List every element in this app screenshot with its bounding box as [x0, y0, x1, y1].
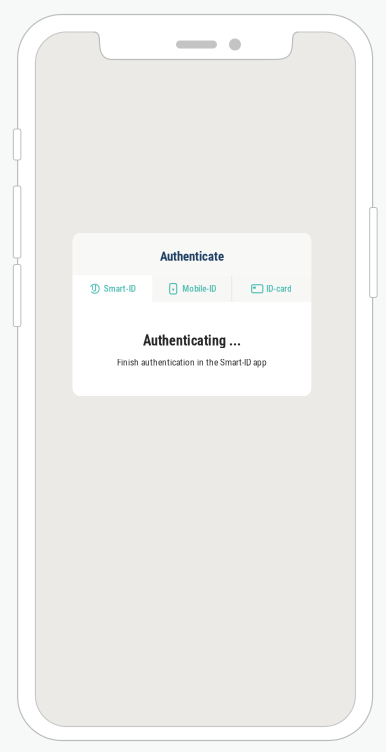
staticText: ID-card — [266, 283, 291, 294]
staticText: Mobile-ID — [182, 283, 216, 294]
button[interactable]: ID-card — [232, 275, 311, 302]
button[interactable]: Smart-ID — [73, 275, 152, 302]
staticText: Authenticating ... — [143, 332, 241, 349]
staticText: Smart-ID — [104, 283, 136, 294]
staticText: Authenticate — [160, 249, 224, 264]
button[interactable]: Mobile-ID — [152, 275, 232, 302]
staticText: Finish authentication in the Smart-ID ap… — [117, 357, 267, 368]
